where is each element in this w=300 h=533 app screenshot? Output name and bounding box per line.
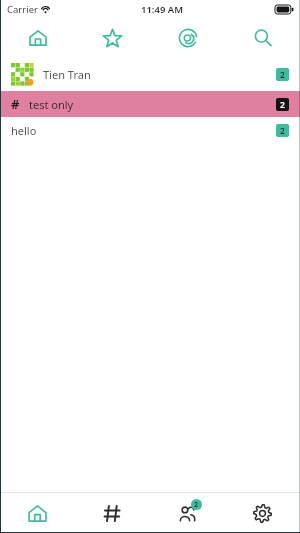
staticText: 2 — [280, 125, 285, 137]
staticText: test only — [29, 97, 74, 112]
button[interactable]: hello — [0, 117, 300, 143]
button[interactable]: Search — [225, 18, 300, 58]
staticText: 11:49 AM — [141, 3, 184, 16]
staticText: Carrier — [7, 3, 38, 16]
button[interactable]: Settings — [225, 493, 300, 533]
button[interactable]: # — [0, 91, 300, 117]
button[interactable]: Tien Tran — [0, 58, 300, 91]
button[interactable]: Channels — [75, 493, 150, 533]
staticText: hello — [11, 123, 37, 138]
button[interactable]: Favorites — [75, 18, 150, 58]
button[interactable]: People — [150, 493, 225, 533]
staticText: 2 — [280, 69, 285, 81]
button[interactable]: Home — [0, 493, 75, 533]
staticText: Tien Tran — [43, 67, 91, 82]
button[interactable]: Home — [0, 18, 75, 58]
staticText: 2 — [280, 99, 285, 111]
staticText: # — [11, 95, 20, 113]
staticText: 2 — [194, 500, 199, 510]
button[interactable]: Mentions — [150, 18, 225, 58]
